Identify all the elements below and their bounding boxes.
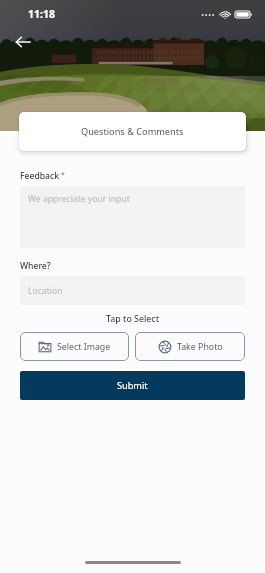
staticText: Tap to Select <box>106 313 160 325</box>
button[interactable]: Location <box>20 276 245 305</box>
staticText: 11:18 <box>28 7 55 21</box>
button[interactable]: Submit <box>20 371 245 400</box>
staticText: We appreciate your input <box>28 193 130 205</box>
staticText: Select Image <box>57 341 111 353</box>
staticText: Feedback <box>20 170 59 182</box>
button[interactable]: Select Image <box>20 332 129 361</box>
staticText: Take Photo <box>177 341 223 353</box>
staticText: Questions & Comments <box>81 125 184 138</box>
staticText: Where? <box>20 260 51 272</box>
staticText: Location <box>28 285 63 297</box>
button[interactable]: Questions & Comments <box>19 112 246 151</box>
staticText: Submit <box>117 379 148 392</box>
button[interactable]: We appreciate your input <box>20 186 245 248</box>
button[interactable]: Take Photo <box>135 332 245 361</box>
button[interactable]: Back <box>10 29 36 55</box>
staticText: * <box>61 170 65 180</box>
